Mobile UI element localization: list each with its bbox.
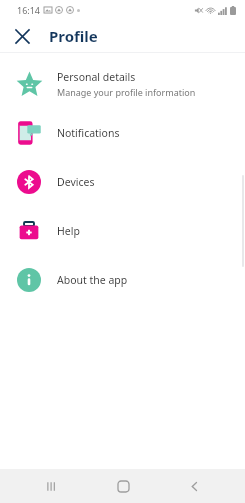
- staticText: Manage your profile information: [57, 86, 196, 98]
- button[interactable]: Recent apps: [31, 469, 71, 503]
- staticText: Personal details: [57, 70, 136, 84]
- staticText: Profile: [49, 26, 98, 46]
- staticText: About the app: [57, 273, 128, 287]
- button[interactable]: Close: [6, 20, 38, 52]
- staticText: Help: [57, 224, 80, 238]
- staticText: Devices: [57, 175, 95, 189]
- button[interactable]: Back: [174, 469, 214, 503]
- button[interactable]: About the app: [0, 255, 245, 304]
- button[interactable]: Home: [103, 469, 143, 503]
- button[interactable]: Notifications: [0, 108, 245, 157]
- button[interactable]: Help: [0, 206, 245, 255]
- staticText: 16:14: [17, 4, 41, 16]
- button[interactable]: Personal details: [0, 59, 245, 108]
- button[interactable]: Devices: [0, 157, 245, 206]
- staticText: Notifications: [57, 126, 120, 140]
